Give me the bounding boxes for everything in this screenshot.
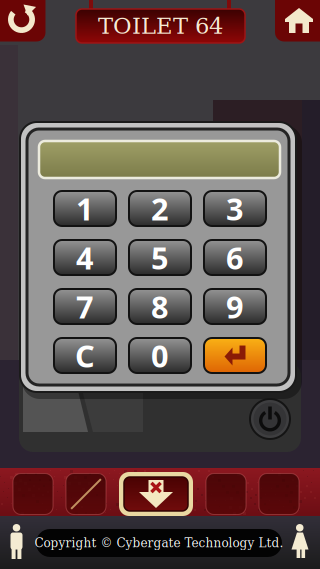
button[interactable]: Power bbox=[249, 398, 291, 440]
staticText: 3 bbox=[226, 188, 244, 229]
button[interactable]: C bbox=[54, 338, 116, 373]
staticText: 0 bbox=[151, 335, 169, 376]
staticText: Copyright © Cybergate Technology Ltd. bbox=[34, 536, 283, 550]
button[interactable]: 3 bbox=[204, 191, 266, 226]
staticText: TOILET 64 bbox=[98, 13, 223, 39]
button[interactable]: 6 bbox=[204, 240, 266, 275]
staticText: 8 bbox=[151, 286, 169, 327]
staticText: 7 bbox=[76, 286, 94, 327]
button[interactable]: Restart bbox=[0, 0, 49, 45]
staticText: 5 bbox=[151, 237, 169, 278]
button[interactable]: 2 bbox=[129, 191, 191, 226]
button[interactable]: 7 bbox=[54, 289, 116, 324]
button[interactable]: Rod item bbox=[66, 473, 106, 514]
staticText: 6 bbox=[226, 237, 244, 278]
button[interactable]: 5 bbox=[129, 240, 191, 275]
button[interactable]: Empty inventory slot bbox=[259, 473, 299, 514]
staticText: 2 bbox=[151, 188, 169, 229]
button[interactable]: 0 bbox=[129, 338, 191, 373]
button[interactable]: 9 bbox=[204, 289, 266, 324]
button[interactable]: 8 bbox=[129, 289, 191, 324]
staticText: 4 bbox=[76, 237, 94, 278]
staticText: 1 bbox=[76, 188, 94, 229]
button[interactable]: 4 bbox=[54, 240, 116, 275]
button[interactable]: Enter bbox=[204, 338, 266, 373]
button[interactable]: Drop item bbox=[119, 472, 193, 516]
staticText: 9 bbox=[226, 286, 244, 327]
button[interactable]: Empty inventory slot bbox=[13, 473, 53, 514]
button[interactable]: 1 bbox=[54, 191, 116, 226]
button[interactable]: Empty inventory slot bbox=[206, 473, 246, 514]
button[interactable]: Home bbox=[272, 0, 320, 45]
staticText: C bbox=[75, 335, 95, 376]
